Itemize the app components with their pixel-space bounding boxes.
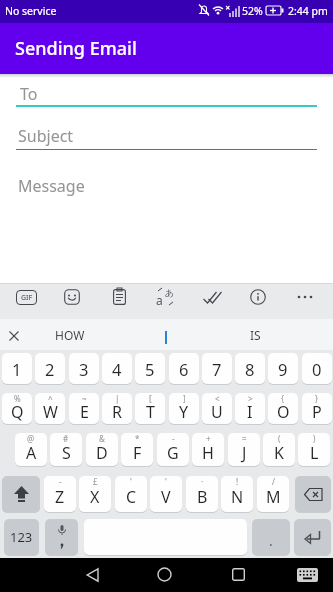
button[interactable] <box>86 568 99 582</box>
staticText: 8 <box>245 358 255 380</box>
button[interactable]: To <box>20 83 38 105</box>
button[interactable] <box>64 289 80 305</box>
staticText: ( <box>278 433 281 444</box>
staticText: 2 <box>45 358 55 380</box>
button[interactable]: > <box>235 393 265 424</box>
button[interactable]: 7 <box>202 353 232 384</box>
button[interactable] <box>9 331 19 341</box>
button[interactable]: 2 <box>35 353 65 384</box>
button[interactable]: 8 <box>235 353 265 384</box>
button[interactable] <box>294 519 331 555</box>
button[interactable]: · <box>186 476 218 512</box>
button[interactable]: ) <box>298 433 330 466</box>
button[interactable] <box>2 476 40 512</box>
button[interactable] <box>203 291 222 304</box>
button[interactable]: 6 <box>169 353 199 384</box>
staticText: # <box>63 433 69 444</box>
button[interactable] <box>297 568 318 582</box>
button[interactable]: Subject <box>18 125 74 147</box>
button[interactable]: 1 <box>2 353 32 384</box>
button[interactable]: GIF <box>16 290 37 305</box>
staticText: R <box>112 401 122 423</box>
staticText: HOW <box>55 327 85 343</box>
button[interactable] <box>232 568 245 581</box>
button[interactable] <box>45 519 78 555</box>
button[interactable]: Message <box>18 175 85 197</box>
staticText: } <box>315 393 319 404</box>
staticText: { <box>281 393 285 404</box>
staticText: 9 <box>278 358 288 380</box>
button[interactable]: ^ <box>35 393 65 424</box>
button[interactable]: - <box>44 476 76 512</box>
button[interactable]: = <box>228 433 260 466</box>
staticText: O <box>277 401 290 423</box>
staticText: No service <box>5 4 57 18</box>
button[interactable]: IS <box>215 319 295 350</box>
button[interactable]: | <box>102 393 132 424</box>
staticText: Z <box>55 486 65 508</box>
staticText: T <box>146 401 155 423</box>
staticText: [ <box>149 393 152 404</box>
staticText: U <box>211 401 223 423</box>
button[interactable]: [ <box>135 393 165 424</box>
button[interactable] <box>295 476 331 512</box>
button[interactable]: - <box>157 433 189 466</box>
staticText: ! <box>236 476 239 487</box>
staticText: V <box>161 486 171 508</box>
button[interactable]: HOW <box>30 319 110 350</box>
staticText: GIF <box>21 293 33 303</box>
staticText: Q <box>11 401 24 423</box>
staticText: ) <box>313 433 316 444</box>
button[interactable]: ' <box>150 476 182 512</box>
button[interactable]: ] <box>169 393 199 424</box>
staticText: ~ <box>82 393 87 404</box>
button[interactable] <box>113 288 126 305</box>
button[interactable]: * <box>121 433 153 466</box>
staticText: 2:44 pm <box>288 4 328 18</box>
button[interactable]: 123 <box>4 519 39 555</box>
staticText: IS <box>250 327 261 343</box>
button[interactable]: } <box>302 393 332 424</box>
button[interactable]: ( <box>263 433 295 466</box>
button[interactable]: ! <box>221 476 253 512</box>
button[interactable] <box>250 289 266 305</box>
button[interactable]: @ <box>15 433 47 466</box>
button[interactable]: a <box>156 287 176 307</box>
staticText: F <box>133 442 142 464</box>
button[interactable]: . <box>252 519 290 555</box>
staticText: 1 <box>12 358 22 380</box>
button[interactable] <box>157 567 172 582</box>
button[interactable]: { <box>268 393 298 424</box>
staticText: + <box>206 433 211 444</box>
button[interactable]: < <box>202 393 232 424</box>
button[interactable]: £ <box>79 476 111 512</box>
staticText: M <box>266 486 281 508</box>
button[interactable]: # <box>50 433 82 466</box>
staticText: / <box>272 476 275 487</box>
staticText: C <box>126 486 137 508</box>
button[interactable]: Sending Email <box>0 23 333 74</box>
button[interactable]: 9 <box>268 353 298 384</box>
button[interactable]: / <box>257 476 289 512</box>
staticText: X <box>90 486 100 508</box>
button[interactable]: ~ <box>69 393 99 424</box>
staticText: % <box>14 393 21 404</box>
button[interactable]: 0 <box>302 353 332 384</box>
staticText: = <box>242 433 247 444</box>
button[interactable]: + <box>192 433 224 466</box>
button[interactable]: 4 <box>102 353 132 384</box>
staticText: ' <box>130 476 132 487</box>
staticText: - <box>172 433 175 444</box>
staticText: | <box>115 393 120 404</box>
button[interactable]: % <box>2 393 32 424</box>
button[interactable]: ' <box>115 476 147 512</box>
staticText: N <box>231 486 244 508</box>
button[interactable]: & <box>86 433 118 466</box>
staticText: £ <box>93 476 98 487</box>
button[interactable] <box>297 295 313 299</box>
button[interactable]: 5 <box>135 353 165 384</box>
button[interactable]: 3 <box>69 353 99 384</box>
staticText: - <box>59 476 62 487</box>
staticText: Y <box>179 401 189 423</box>
